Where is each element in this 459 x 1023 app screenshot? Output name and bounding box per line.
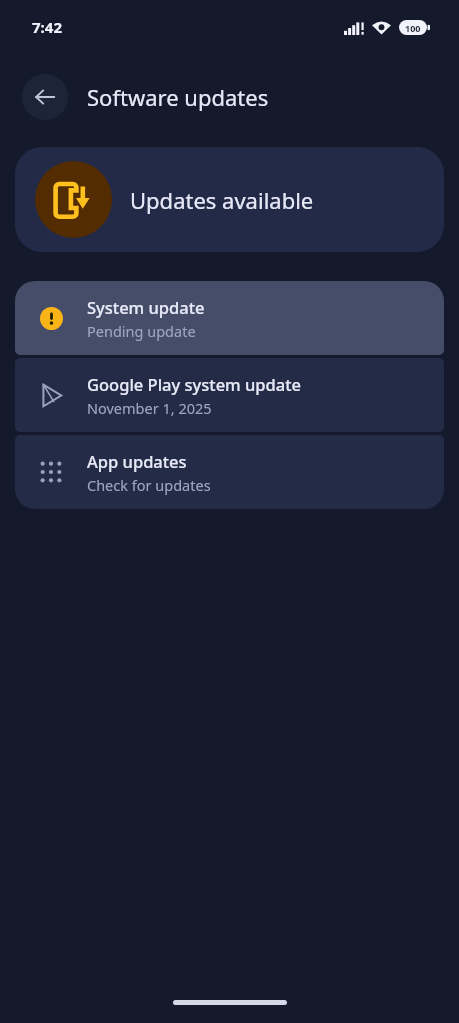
button[interactable]: Google Play system update bbox=[15, 358, 444, 432]
staticText: Pending update bbox=[87, 321, 196, 341]
staticText: 7:42 bbox=[32, 17, 62, 37]
staticText: System update bbox=[87, 296, 205, 318]
button[interactable]: Back bbox=[22, 74, 68, 120]
staticText: App updates bbox=[87, 450, 187, 472]
staticText: Check for updates bbox=[87, 475, 211, 495]
staticText: Updates available bbox=[130, 185, 314, 215]
staticText: 100 bbox=[405, 22, 421, 34]
staticText: Software updates bbox=[87, 82, 269, 112]
button[interactable]: App updates bbox=[15, 435, 444, 509]
staticText: November 1, 2025 bbox=[87, 398, 212, 418]
button[interactable]: Updates available bbox=[15, 147, 444, 252]
button[interactable]: System update bbox=[15, 281, 444, 355]
staticText: Google Play system update bbox=[87, 373, 302, 395]
